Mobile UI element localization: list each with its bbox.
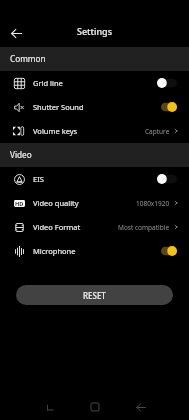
staticText: EIS [33,174,44,184]
staticText: Video quality [33,198,79,208]
staticText: Settings [77,25,113,37]
staticText: Video [10,149,32,160]
button[interactable]: Switch off [157,76,177,90]
staticText: Grid line [33,78,63,88]
button[interactable]: HD [0,191,189,215]
staticText: Common [10,53,46,64]
button[interactable]: Switch on [157,100,177,114]
button[interactable]: Video Format [0,215,189,239]
staticText: Volume keys [33,126,78,136]
staticText: RESET [83,290,106,301]
button[interactable]: Recents [36,394,62,420]
staticText: HD [15,200,24,207]
button[interactable]: Grid line [0,71,189,95]
button[interactable]: Switch on [157,244,177,258]
button[interactable]: Back [7,24,25,42]
button[interactable]: RESET [16,285,173,305]
button[interactable]: Volume keys [0,119,189,143]
button[interactable]: EIS [0,167,189,191]
staticText: Shutter Sound [33,102,84,112]
staticText: Microphone [33,246,76,256]
staticText: Most compatible [118,223,170,232]
staticText: Capture [145,127,170,136]
button[interactable]: Switch off [157,172,177,186]
button[interactable]: Back [128,394,154,420]
button[interactable]: Microphone [0,239,189,263]
button[interactable]: Shutter Sound [0,95,189,119]
staticText: Video Format [33,222,81,232]
staticText: 1080x1920 [136,199,170,208]
button[interactable]: Home [82,394,108,420]
